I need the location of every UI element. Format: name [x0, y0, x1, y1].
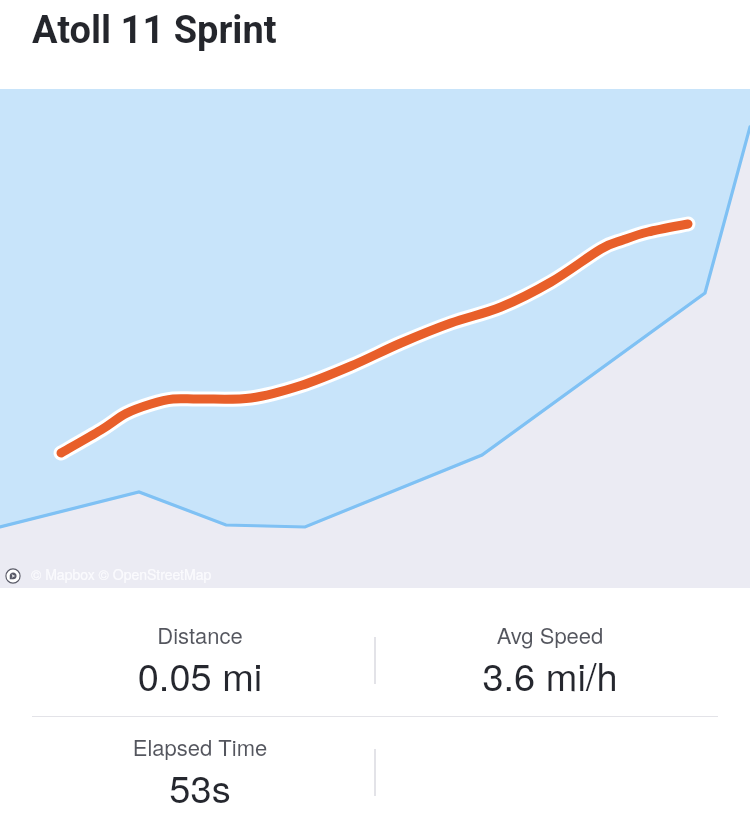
staticText: 53s [25, 759, 375, 813]
button[interactable]: Mapbox [5, 568, 21, 584]
staticText: Distance [25, 619, 375, 651]
button[interactable]: © Mapbox © OpenStreetMap [31, 564, 212, 584]
button[interactable]: Avg Speed [375, 604, 725, 716]
button[interactable]: Elapsed Time [25, 716, 375, 824]
staticText: Atoll 11 Sprint [32, 8, 277, 53]
staticText: Avg Speed [375, 619, 725, 651]
staticText: Elapsed Time [25, 731, 375, 763]
staticText: 3.6 mi/h [375, 647, 725, 701]
button[interactable]: Route map [0, 89, 750, 588]
button[interactable]: Atoll 11 Sprint [0, 0, 750, 89]
staticText: 0.05 mi [25, 647, 375, 701]
button[interactable]: Distance [25, 604, 375, 716]
